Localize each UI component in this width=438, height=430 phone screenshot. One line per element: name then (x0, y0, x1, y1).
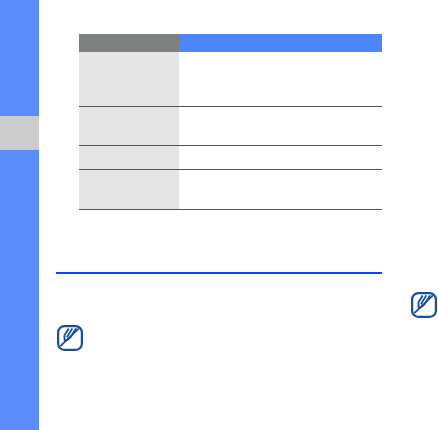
button[interactable]: Note (411, 292, 437, 318)
button[interactable]: Note (57, 325, 83, 351)
